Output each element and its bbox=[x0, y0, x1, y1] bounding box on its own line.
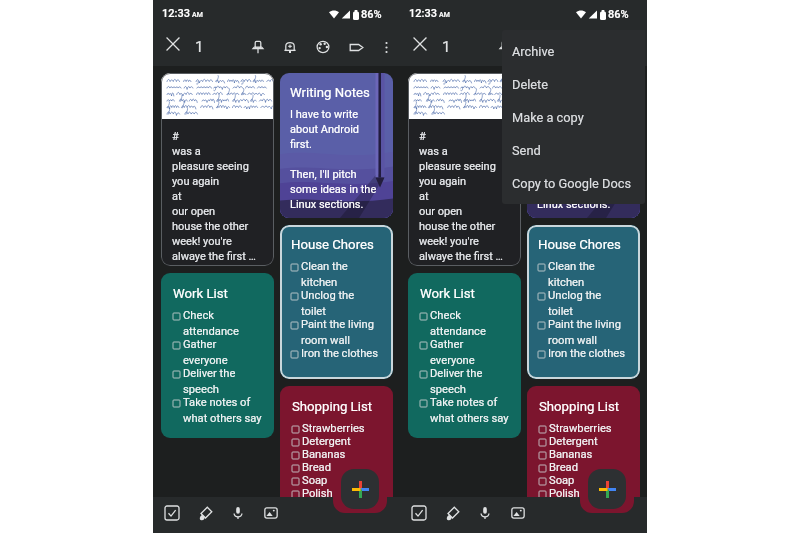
button[interactable]: Create new note bbox=[341, 469, 379, 509]
staticText: Detergent bbox=[302, 435, 351, 448]
staticText: Writing Notes bbox=[290, 85, 370, 100]
staticText: Gather everyone bbox=[183, 338, 228, 367]
button[interactable]: Color bbox=[308, 32, 338, 62]
button[interactable]: New voice note bbox=[471, 499, 499, 527]
staticText: Bananas bbox=[549, 448, 593, 461]
staticText: Send bbox=[512, 143, 541, 158]
staticText: # was a pleasure seeing you again at our… bbox=[419, 130, 503, 263]
staticText: Work List bbox=[173, 286, 228, 301]
button[interactable]: Work List bbox=[408, 273, 521, 438]
button[interactable]: More options bbox=[618, 32, 648, 62]
button[interactable]: New list bbox=[405, 499, 433, 527]
button[interactable]: Reminder bbox=[522, 32, 552, 62]
button[interactable]: Shopping List bbox=[280, 386, 393, 519]
staticText: Soap bbox=[302, 474, 328, 487]
staticText: 86% bbox=[361, 8, 382, 21]
button[interactable]: Pin bbox=[490, 32, 520, 62]
button[interactable]: Writing Notes bbox=[280, 73, 393, 218]
staticText: Paint the living room wall bbox=[548, 318, 621, 347]
staticText: Polish bbox=[549, 487, 580, 500]
button[interactable]: New list bbox=[158, 499, 186, 527]
staticText: Shopping List bbox=[292, 399, 373, 414]
button[interactable]: Delete bbox=[502, 68, 645, 101]
button[interactable]: Work List bbox=[161, 273, 274, 438]
staticText: AM bbox=[192, 11, 203, 19]
staticText: Clean the kitchen bbox=[301, 260, 348, 289]
staticText: Work List bbox=[420, 286, 475, 301]
button[interactable]: Reminder bbox=[275, 32, 305, 62]
button[interactable]: # was a pleasure seeing you again at our… bbox=[161, 73, 274, 266]
staticText: Paint the living room wall bbox=[301, 318, 374, 347]
staticText: Delete bbox=[512, 77, 549, 92]
button[interactable]: More options bbox=[371, 32, 401, 62]
button[interactable]: Make a copy bbox=[502, 101, 645, 134]
staticText: I have to write about Android first. The… bbox=[537, 108, 624, 211]
staticText: Check attendance bbox=[430, 309, 486, 338]
button[interactable]: Shopping List bbox=[527, 386, 640, 519]
staticText: Make a copy bbox=[512, 110, 584, 125]
staticText: Unclog the toilet bbox=[548, 289, 602, 318]
button[interactable]: Writing Notes bbox=[527, 73, 640, 218]
staticText: House Chores bbox=[538, 237, 621, 252]
staticText: 86% bbox=[608, 8, 629, 21]
staticText: House Chores bbox=[291, 237, 374, 252]
button[interactable]: House Chores bbox=[527, 225, 640, 379]
button[interactable]: # was a pleasure seeing you again at our… bbox=[408, 73, 521, 266]
button[interactable]: Close bbox=[405, 29, 435, 59]
staticText: Take notes of what others say bbox=[430, 396, 509, 425]
button[interactable]: New image note bbox=[257, 499, 285, 527]
staticText: Archive bbox=[512, 44, 555, 59]
staticText: Soap bbox=[549, 474, 575, 487]
staticText: Bananas bbox=[302, 448, 346, 461]
staticText: Unclog the toilet bbox=[301, 289, 355, 318]
staticText: Gather everyone bbox=[430, 338, 475, 367]
staticText: Bread bbox=[302, 461, 331, 474]
staticText: Strawberries bbox=[549, 422, 612, 435]
button[interactable]: New drawing bbox=[438, 499, 466, 527]
staticText: Polish bbox=[302, 487, 333, 500]
button[interactable]: Label bbox=[341, 32, 371, 62]
staticText: Detergent bbox=[549, 435, 598, 448]
button[interactable]: Close bbox=[158, 29, 188, 59]
button[interactable]: New voice note bbox=[224, 499, 252, 527]
staticText: Take notes of what others say bbox=[183, 396, 262, 425]
staticText: 1 bbox=[195, 38, 204, 56]
staticText: Deliver the speech bbox=[183, 367, 236, 396]
staticText: Iron the clothes bbox=[548, 347, 626, 360]
staticText: Strawberries bbox=[302, 422, 365, 435]
staticText: 12:33 bbox=[162, 7, 190, 20]
button[interactable]: Create new note bbox=[588, 469, 626, 509]
staticText: # was a pleasure seeing you again at our… bbox=[172, 130, 256, 263]
button[interactable]: Archive bbox=[502, 35, 645, 68]
staticText: 1 bbox=[442, 38, 451, 56]
staticText: Copy to Google Docs bbox=[512, 176, 632, 191]
button[interactable]: New image note bbox=[504, 499, 532, 527]
button[interactable]: New drawing bbox=[191, 499, 219, 527]
staticText: Iron the clothes bbox=[301, 347, 379, 360]
staticText: 12:33 bbox=[409, 7, 437, 20]
staticText: AM bbox=[439, 11, 450, 19]
staticText: I have to write about Android first. The… bbox=[290, 108, 377, 211]
staticText: Deliver the speech bbox=[430, 367, 483, 396]
button[interactable]: Send bbox=[502, 134, 645, 167]
staticText: Bread bbox=[549, 461, 578, 474]
staticText: Writing Notes bbox=[537, 85, 617, 100]
button[interactable]: Pin bbox=[243, 32, 273, 62]
button[interactable]: House Chores bbox=[280, 225, 393, 379]
button[interactable]: Copy to Google Docs bbox=[502, 167, 645, 200]
staticText: Shopping List bbox=[539, 399, 620, 414]
staticText: Check attendance bbox=[183, 309, 239, 338]
staticText: Clean the kitchen bbox=[548, 260, 595, 289]
